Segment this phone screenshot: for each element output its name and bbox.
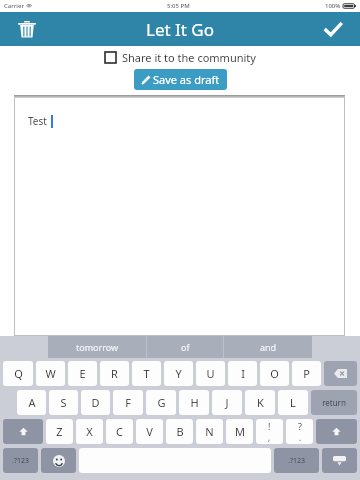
button[interactable]: return <box>311 390 357 415</box>
button[interactable]: Delete <box>0 12 54 46</box>
button[interactable]: A <box>17 390 46 415</box>
button[interactable]: O <box>260 361 289 386</box>
staticText: O <box>270 366 279 381</box>
button[interactable]: .?123 <box>274 448 319 473</box>
staticText: .?123 <box>288 456 305 466</box>
staticText: . <box>299 432 302 443</box>
button[interactable]: P <box>292 361 321 386</box>
staticText: W <box>45 366 56 381</box>
staticText: of <box>181 341 190 353</box>
button[interactable]: Share it to the community <box>105 50 256 65</box>
staticText: F <box>125 395 131 410</box>
staticText: V <box>146 424 153 439</box>
button[interactable]: N <box>196 419 223 444</box>
button[interactable]: Shift <box>3 419 43 444</box>
staticText: A <box>28 395 36 410</box>
button[interactable]: E <box>68 361 97 386</box>
button[interactable]: W <box>36 361 65 386</box>
button[interactable]: of <box>147 336 223 358</box>
button[interactable]: K <box>245 390 275 415</box>
button[interactable]: Shift <box>316 419 357 444</box>
button[interactable]: Y <box>164 361 193 386</box>
button[interactable]: Hide keyboard <box>322 448 357 473</box>
staticText: Share it to the community <box>122 50 256 65</box>
button[interactable]: I <box>228 361 257 386</box>
staticText: Q <box>14 366 23 381</box>
staticText: K <box>257 395 264 410</box>
staticText: 5:05 PM <box>167 2 190 10</box>
button[interactable]: tomorrow <box>48 336 146 358</box>
staticText: N <box>205 424 214 439</box>
staticText: Y <box>175 366 182 381</box>
staticText: Carrier <box>4 2 24 10</box>
button[interactable]: Q <box>3 361 33 386</box>
staticText: M <box>235 424 245 439</box>
staticText: , <box>268 432 271 443</box>
button[interactable]: Save as draft <box>134 69 227 90</box>
button[interactable]: S <box>49 390 78 415</box>
button[interactable]: U <box>196 361 225 386</box>
staticText: T <box>143 366 150 381</box>
button[interactable]: L <box>278 390 308 415</box>
staticText: I <box>241 366 245 381</box>
button[interactable]: and <box>224 336 312 358</box>
staticText: D <box>91 395 100 410</box>
staticText: S <box>60 395 67 410</box>
staticText: G <box>157 395 166 410</box>
staticText: Let It Go <box>146 18 215 41</box>
button[interactable]: Emoji <box>41 448 76 473</box>
staticText: return <box>322 397 346 408</box>
staticText: J <box>225 395 229 410</box>
button[interactable]: Z <box>46 419 73 444</box>
button[interactable]: B <box>166 419 193 444</box>
button[interactable]: Backspace <box>324 361 357 386</box>
staticText: X <box>86 424 93 439</box>
staticText: E <box>79 366 86 381</box>
staticText: and <box>260 341 277 353</box>
staticText: tomorrow <box>76 341 119 353</box>
button[interactable]: V <box>136 419 163 444</box>
staticText: ? <box>298 420 302 432</box>
staticText: U <box>206 366 215 381</box>
staticText: R <box>111 366 118 381</box>
staticText: L <box>290 395 296 410</box>
button[interactable]: F <box>113 390 143 415</box>
button[interactable]: R <box>100 361 129 386</box>
staticText: .?123 <box>12 456 29 466</box>
button[interactable]: ? <box>286 419 313 444</box>
staticText: 100% <box>325 2 341 10</box>
button[interactable]: T <box>132 361 161 386</box>
button[interactable]: M <box>226 419 253 444</box>
button[interactable]: J <box>212 390 242 415</box>
staticText: Save as draft <box>153 72 220 87</box>
staticText: H <box>190 395 199 410</box>
button[interactable]: X <box>76 419 103 444</box>
button[interactable]: .?123 <box>3 448 38 473</box>
staticText: P <box>303 366 310 381</box>
staticText: ! <box>268 420 271 432</box>
button[interactable]: G <box>146 390 176 415</box>
staticText: Z <box>56 424 63 439</box>
button[interactable]: H <box>179 390 209 415</box>
button[interactable]: D <box>81 390 110 415</box>
button[interactable]: Done <box>306 12 360 46</box>
staticText: C <box>116 424 123 439</box>
staticText: B <box>176 424 184 439</box>
staticText: Test <box>28 114 47 128</box>
button[interactable]: ! <box>256 419 283 444</box>
button[interactable]: C <box>106 419 133 444</box>
